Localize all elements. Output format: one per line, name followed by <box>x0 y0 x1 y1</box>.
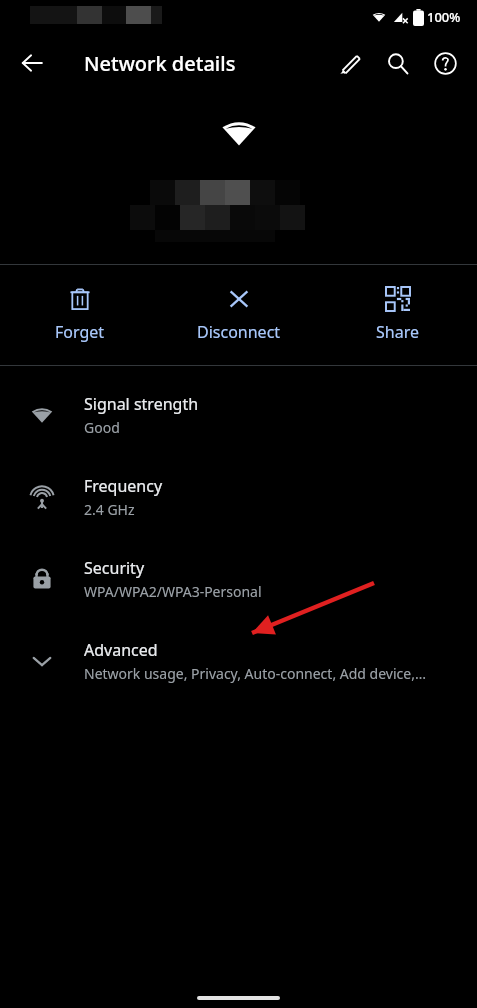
button[interactable]: Edit <box>325 39 373 87</box>
button[interactable]: Forget <box>0 265 159 365</box>
staticText: Advanced <box>84 639 158 661</box>
button[interactable]: Security <box>0 538 477 620</box>
button[interactable]: Back <box>10 41 54 85</box>
button[interactable]: Signal strength <box>0 374 477 456</box>
staticText: 100% <box>427 8 461 26</box>
staticText: 2.4 GHz <box>84 500 135 519</box>
staticText: Good <box>84 418 120 437</box>
button[interactable]: Help <box>421 39 469 87</box>
staticText: Forget <box>55 321 105 343</box>
staticText: Security <box>84 557 145 579</box>
staticText: Network usage, Privacy, Auto-connect, Ad… <box>84 664 426 683</box>
button[interactable]: Advanced <box>0 620 477 702</box>
staticText: Signal strength <box>84 393 199 415</box>
staticText: WPA/WPA2/WPA3-Personal <box>84 582 262 601</box>
staticText: Share <box>376 321 419 343</box>
button[interactable]: Share <box>318 265 477 365</box>
staticText: Disconnect <box>197 321 281 343</box>
button[interactable]: Search <box>373 39 421 87</box>
staticText: Frequency <box>84 475 163 497</box>
button[interactable]: Disconnect <box>159 265 318 365</box>
button[interactable]: Frequency <box>0 456 477 538</box>
staticText: Network details <box>84 50 236 77</box>
